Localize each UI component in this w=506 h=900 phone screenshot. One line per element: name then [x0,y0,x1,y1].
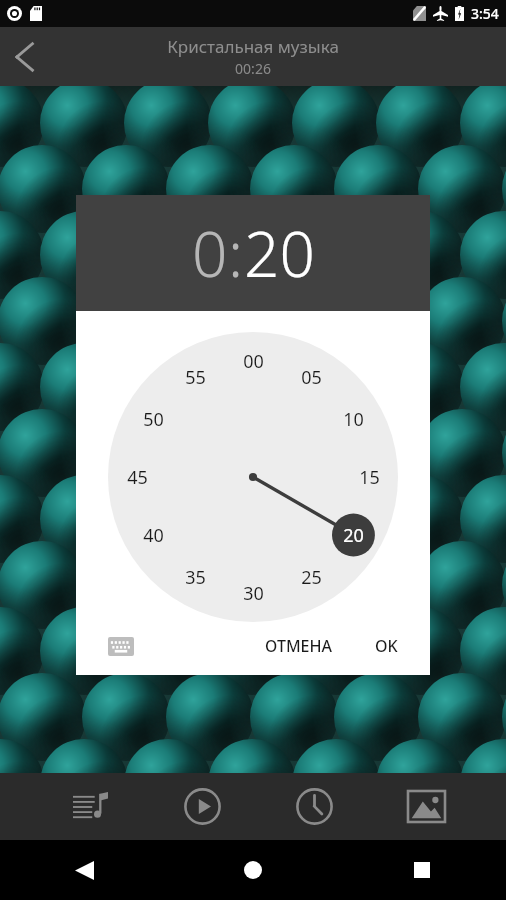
staticText: ОТМЕНА [265,635,333,657]
button[interactable]: Back [0,840,168,900]
staticText: Кристальная музыка [167,35,339,58]
button[interactable]: Switch to keyboard input [104,632,138,660]
staticText: 00:26 [235,59,271,78]
staticText: : [228,211,244,295]
button[interactable]: 20 [244,211,315,295]
staticText: 00 [243,349,264,374]
staticText: 15 [359,465,380,490]
staticText: 50 [143,407,164,432]
button[interactable]: Minute dial [108,332,398,622]
staticText: 20 [343,523,364,548]
button[interactable]: Timer [258,773,370,840]
staticText: 55 [185,365,206,390]
staticText: 45 [127,465,148,490]
staticText: 10 [343,407,364,432]
staticText: OK [375,635,398,657]
staticText: 05 [301,365,322,390]
staticText: 30 [243,581,264,606]
staticText: 35 [185,565,206,590]
button[interactable]: Play [146,773,258,840]
button[interactable]: 0 [192,211,228,295]
button[interactable]: Playlist [34,773,146,840]
staticText: 3:54 [471,4,499,23]
button[interactable]: Images [370,773,482,840]
staticText: 40 [143,523,164,548]
staticText: 0 [192,211,228,295]
staticText: 20 [244,211,315,295]
button[interactable]: ОТМЕНА [255,627,343,665]
button[interactable]: OK [365,627,408,665]
button[interactable]: Recent apps [337,840,506,900]
button[interactable]: Back [0,33,48,81]
button[interactable]: Home [168,840,337,900]
staticText: 25 [301,565,322,590]
